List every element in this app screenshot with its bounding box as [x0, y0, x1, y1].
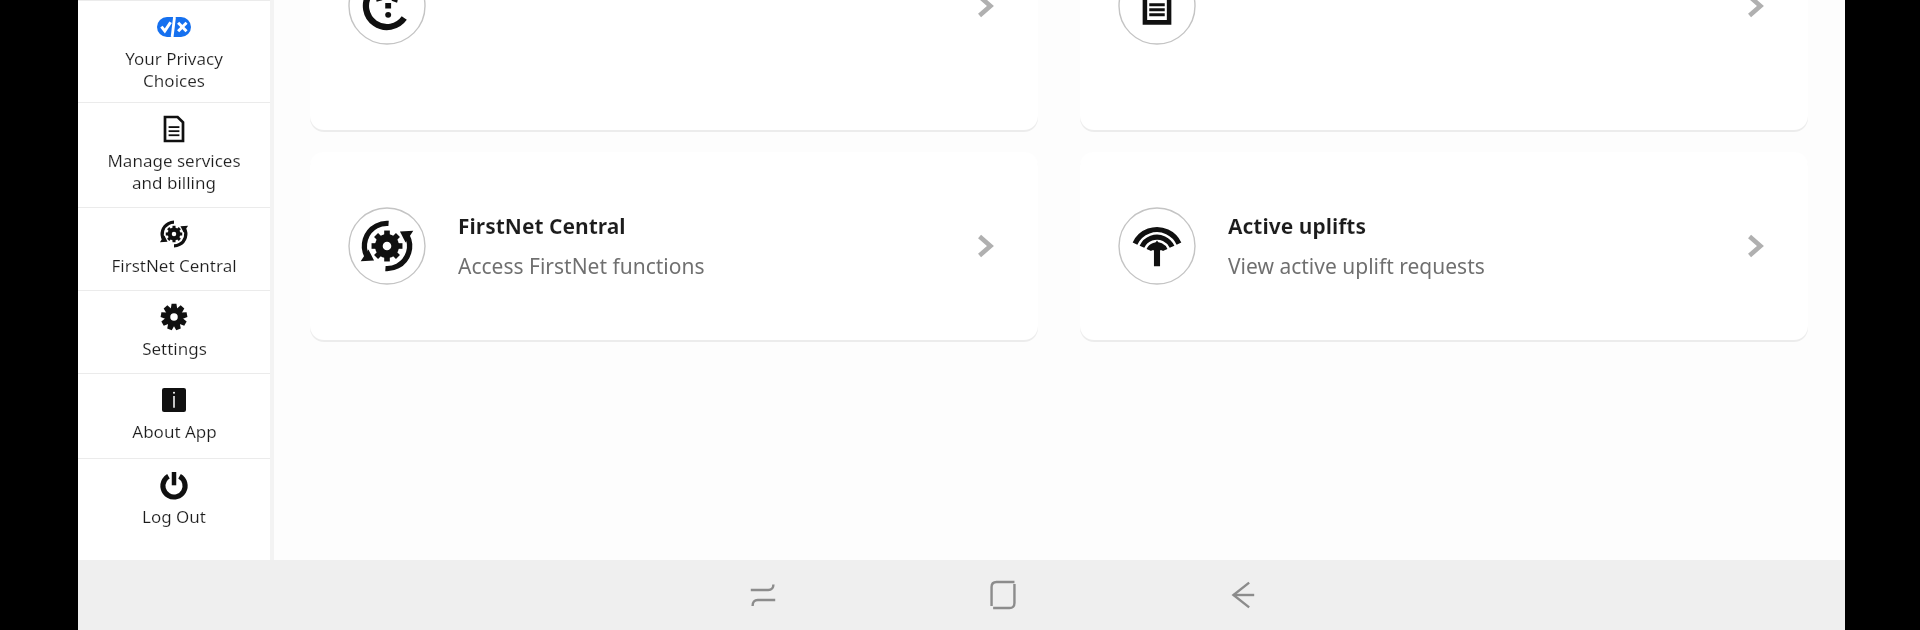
staticText: Active uplifts	[1228, 212, 1366, 241]
button[interactable]: Log Out	[78, 459, 270, 543]
staticText: Manage services and billing	[107, 149, 241, 194]
staticText: Access FirstNet functions	[458, 252, 705, 281]
button[interactable]: Settings	[78, 291, 270, 373]
button[interactable]: Your Privacy Choices	[78, 1, 270, 102]
button[interactable]: Active uplifts	[1080, 152, 1808, 340]
button[interactable]: Back	[1198, 560, 1288, 630]
staticText: FirstNet Central	[111, 254, 237, 277]
button[interactable]: FirstNet Central	[78, 208, 270, 290]
staticText: About App	[132, 420, 217, 443]
staticText: FirstNet Central	[458, 212, 626, 241]
staticText: View active uplift requests	[1228, 252, 1485, 281]
button[interactable]	[310, 0, 1038, 130]
button[interactable]: About App	[78, 374, 270, 458]
button[interactable]: Manage services and billing	[78, 103, 270, 207]
staticText: Log Out	[142, 505, 206, 528]
button[interactable]: FirstNet Central	[310, 152, 1038, 340]
staticText: Your Privacy Choices	[125, 47, 223, 92]
staticText: Settings	[142, 337, 207, 360]
button[interactable]: Home	[958, 560, 1048, 630]
button[interactable]	[1080, 0, 1808, 130]
button[interactable]: Recent apps	[718, 560, 808, 630]
